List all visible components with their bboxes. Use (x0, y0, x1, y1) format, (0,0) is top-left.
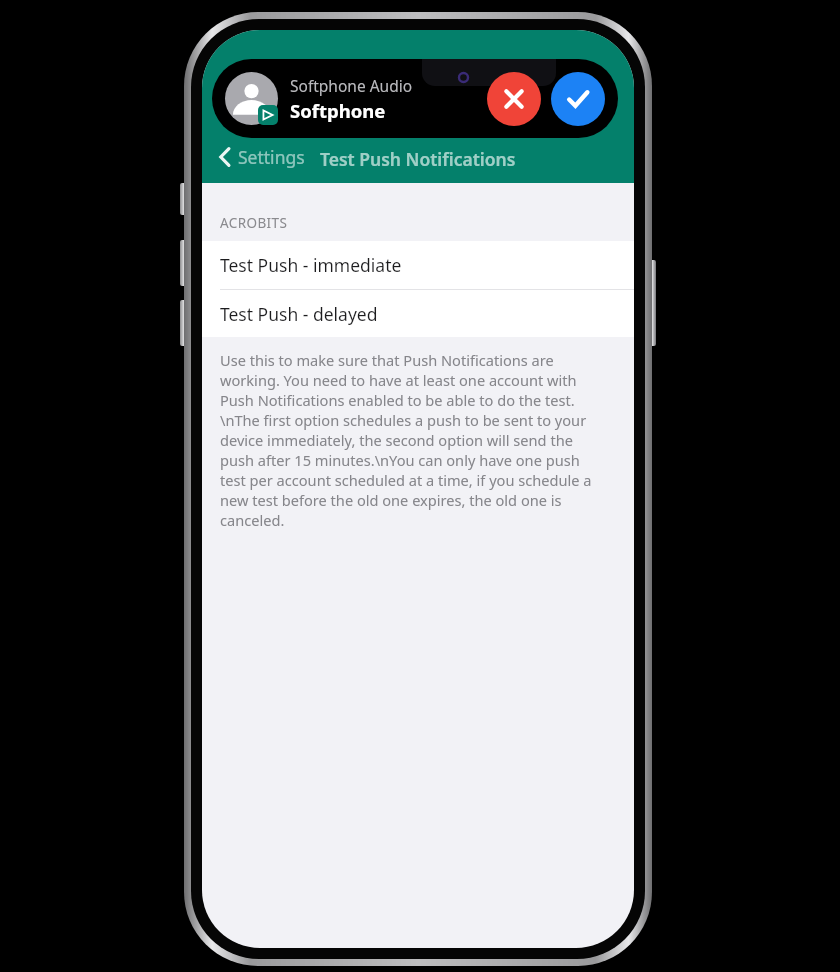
button[interactable]: Decline call (487, 72, 541, 126)
staticText: Softphone (290, 98, 386, 123)
staticText: Softphone Audio (290, 75, 413, 96)
button[interactable]: Accept call (551, 72, 605, 126)
staticText: Test Push - delayed (220, 302, 378, 326)
staticText: Use this to make sure that Push Notifica… (220, 350, 602, 530)
staticText: ACROBITS (220, 214, 288, 232)
staticText: Test Push Notifications (320, 147, 516, 171)
button[interactable]: Test Push - delayed (202, 290, 634, 337)
button[interactable]: Settings (214, 143, 309, 171)
staticText: Test Push - immediate (220, 253, 402, 277)
staticText: Settings (238, 145, 305, 169)
button[interactable]: Test Push - immediate (202, 241, 634, 290)
